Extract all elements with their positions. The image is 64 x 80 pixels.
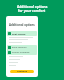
staticText: Seat choice (12, 32, 26, 35)
button[interactable]: Priority boarding (7, 50, 37, 55)
button[interactable]: Seat choice (7, 31, 37, 36)
staticText: Continue (17, 70, 27, 73)
staticText: Extra legroom (12, 46, 27, 49)
staticText: Additional options (9, 23, 35, 27)
staticText: Additional options (17, 4, 48, 8)
button[interactable]: Extra legroom (7, 45, 37, 50)
staticText: for your comfort (18, 8, 46, 12)
button[interactable]: Continue (10, 70, 34, 73)
staticText: Priority boarding (12, 51, 30, 54)
